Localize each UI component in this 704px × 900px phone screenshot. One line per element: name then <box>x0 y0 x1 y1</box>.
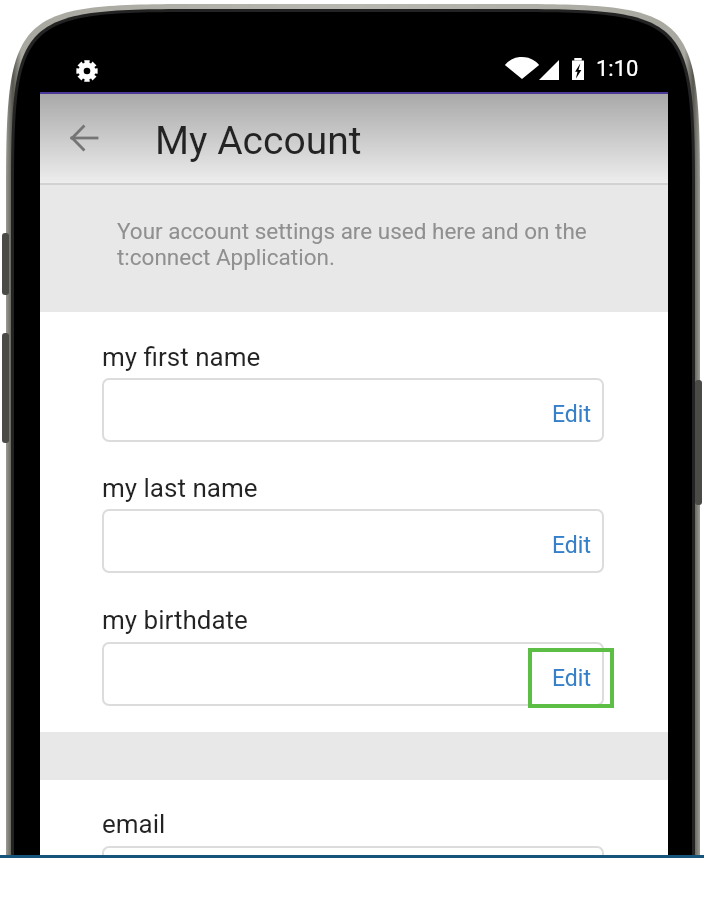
button[interactable]: Edit <box>528 384 614 444</box>
button[interactable]: Back <box>61 115 107 161</box>
staticText: Your account settings are used here and … <box>117 218 603 271</box>
button[interactable]: Edit <box>528 852 614 900</box>
staticText: my last name <box>102 473 258 503</box>
staticText: my first name <box>102 342 261 372</box>
staticText: Edit <box>552 532 591 559</box>
button[interactable]: Edit <box>528 515 614 575</box>
staticText: My Account <box>155 118 362 164</box>
staticText: 1:10 <box>596 56 639 82</box>
button[interactable]: Edit <box>528 648 614 708</box>
staticText: my birthdate <box>102 605 248 635</box>
staticText: email <box>102 809 166 839</box>
staticText: Edit <box>552 665 591 692</box>
staticText: Edit <box>552 401 591 428</box>
other: Settings <box>76 60 98 82</box>
